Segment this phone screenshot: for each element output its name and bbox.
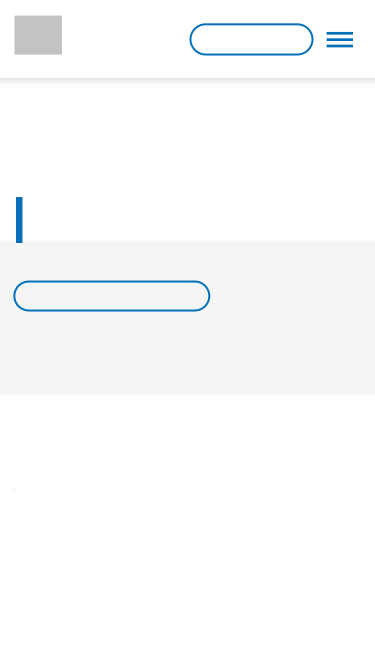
button[interactable]: Learn more	[14, 281, 209, 310]
button[interactable]: Menu	[327, 32, 353, 47]
button[interactable]: Search	[190, 24, 312, 54]
button[interactable]: Home	[14, 16, 62, 55]
